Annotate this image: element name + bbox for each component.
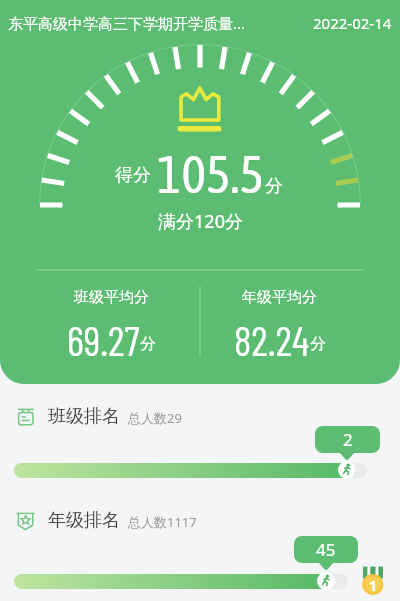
staticText: 分 [265, 175, 283, 198]
staticText: 班级平均分 [74, 288, 149, 307]
staticText: 69.27 [67, 315, 140, 360]
button[interactable]: 年级排名 [0, 506, 400, 536]
staticText: 班级排名 [48, 405, 120, 428]
staticText: 82.24 [234, 315, 310, 360]
staticText: 1 [369, 576, 378, 595]
staticText: 2022-02-14 [313, 13, 392, 33]
staticText: 45 [316, 538, 336, 561]
button[interactable]: 东平高级中学高三下学期开学质量... [8, 13, 246, 33]
staticText: 分 [140, 334, 156, 354]
staticText: 总人数29 [128, 409, 182, 427]
staticText: 分 [310, 334, 326, 354]
staticText: 2 [343, 428, 353, 451]
staticText: 年级平均分 [242, 288, 317, 307]
staticText: 满分120分 [158, 209, 243, 234]
staticText: 得分 [115, 164, 151, 187]
button[interactable]: 45 [294, 536, 358, 563]
button[interactable]: 2 [315, 426, 380, 453]
button[interactable]: 班级排名 [0, 402, 400, 432]
staticText: 105.5 [157, 144, 265, 204]
staticText: 年级排名 [48, 509, 120, 532]
staticText: 总人数1117 [128, 513, 197, 531]
